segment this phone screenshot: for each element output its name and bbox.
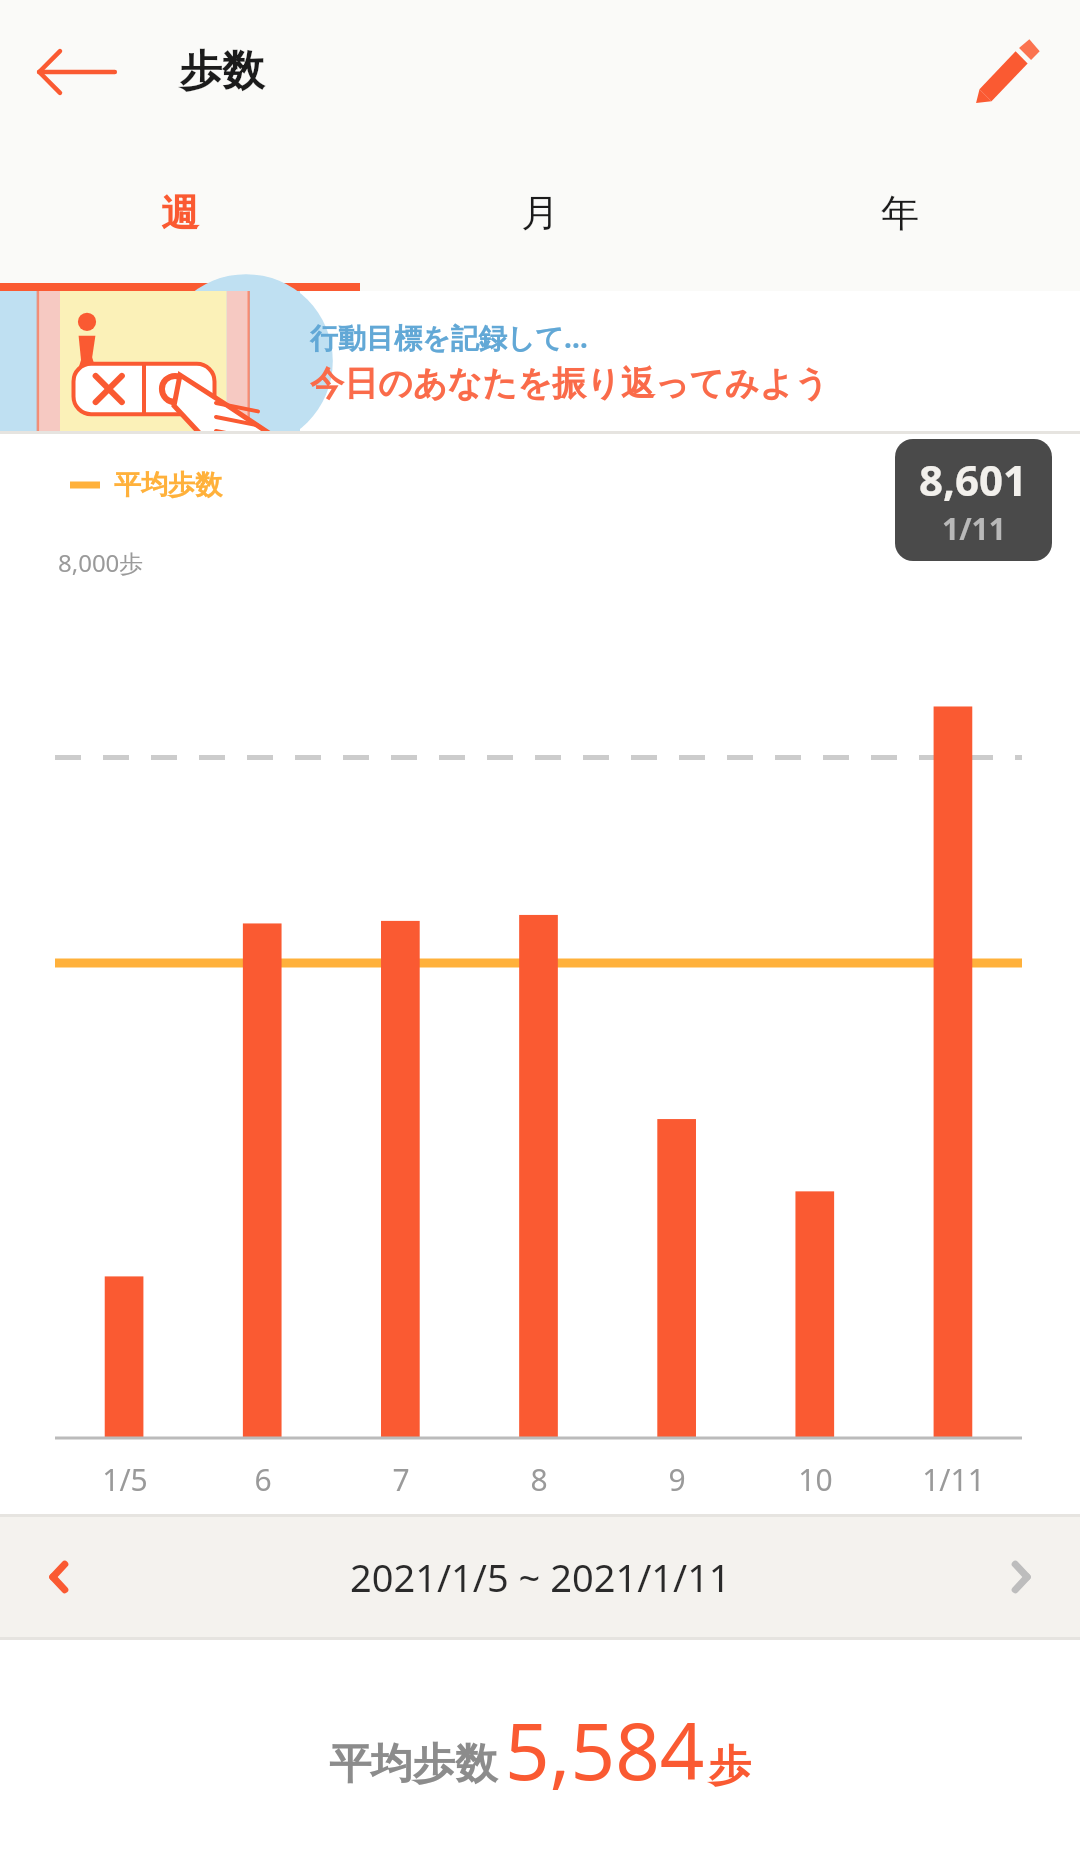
staticText: 1/11 bbox=[942, 508, 1006, 549]
button[interactable]: Edit bbox=[964, 29, 1050, 115]
staticText: 今日のあなたを振り返ってみよう bbox=[310, 362, 829, 405]
staticText: 6 bbox=[254, 1459, 272, 1500]
staticText: 歩数 bbox=[180, 45, 264, 98]
staticText: 平均歩数 bbox=[329, 1738, 497, 1791]
staticText: 8,601 bbox=[919, 451, 1028, 508]
staticText: 1/5 bbox=[102, 1459, 148, 1500]
button[interactable]: Back bbox=[32, 27, 122, 117]
staticText: 5,584 bbox=[505, 1697, 705, 1803]
button[interactable]: 週 bbox=[0, 143, 360, 283]
staticText: 1/11 bbox=[922, 1459, 985, 1500]
staticText: 年 bbox=[881, 189, 919, 237]
button[interactable]: 月 bbox=[360, 143, 720, 283]
staticText: 9 bbox=[668, 1459, 686, 1500]
staticText: 月 bbox=[521, 189, 559, 237]
staticText: 7 bbox=[392, 1459, 410, 1500]
button[interactable]: Next week bbox=[980, 1537, 1060, 1617]
button[interactable]: 行動目標を記録して… bbox=[0, 291, 1080, 431]
staticText: 行動目標を記録して… bbox=[310, 318, 588, 356]
button[interactable]: 年 bbox=[720, 143, 1080, 283]
button[interactable]: Previous week bbox=[20, 1537, 100, 1617]
staticText: 2021/1/5 ~ 2021/1/11 bbox=[350, 1551, 731, 1603]
staticText: 8 bbox=[530, 1459, 548, 1500]
staticText: 週 bbox=[161, 189, 199, 237]
staticText: 10 bbox=[798, 1459, 833, 1500]
staticText: 8,000歩 bbox=[58, 546, 144, 579]
staticText: 歩 bbox=[709, 1740, 751, 1793]
staticText: 平均歩数 bbox=[114, 468, 222, 502]
